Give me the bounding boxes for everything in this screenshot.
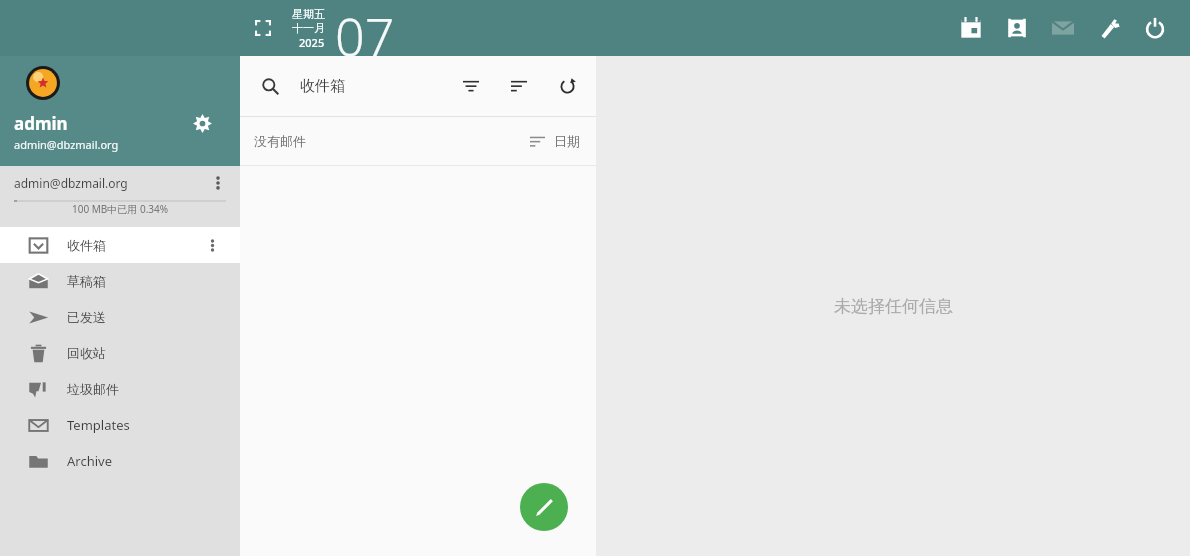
button[interactable]: 已发送 <box>0 299 240 335</box>
staticText: 回收站 <box>67 345 106 361</box>
staticText: Templates <box>67 416 130 434</box>
button[interactable]: admin@dbzmail.org <box>0 166 240 223</box>
staticText: 草稿箱 <box>67 273 106 289</box>
staticText: 已发送 <box>67 309 106 325</box>
staticText: admin@dbzmail.org <box>14 137 119 152</box>
button[interactable]: Search <box>240 56 596 116</box>
staticText: Archive <box>67 452 112 470</box>
staticText: admin <box>14 112 68 135</box>
button[interactable]: Calendar <box>948 5 994 51</box>
staticText: 收件箱 <box>67 237 106 253</box>
staticText: admin@dbzmail.org <box>14 175 128 191</box>
staticText: 收件箱 <box>300 77 345 96</box>
button[interactable]: 没有邮件 <box>240 117 596 165</box>
staticText: 07 <box>335 0 395 56</box>
button[interactable]: Folder menu <box>198 231 226 259</box>
staticText: 垃圾邮件 <box>67 381 119 397</box>
staticText: 未选择任何信息 <box>834 296 953 317</box>
button[interactable]: Archive <box>0 443 240 479</box>
button[interactable]: Compose <box>520 483 568 531</box>
button[interactable]: Account menu <box>204 169 232 197</box>
button[interactable]: Search <box>254 70 286 102</box>
staticText: 十一月 <box>292 21 325 35</box>
staticText: 没有邮件 <box>254 133 306 149</box>
button[interactable]: Contacts <box>994 5 1040 51</box>
staticText: 2025 <box>299 35 325 50</box>
button[interactable]: Fullscreen <box>248 13 278 43</box>
button[interactable]: 回收站 <box>0 335 240 371</box>
button[interactable]: 草稿箱 <box>0 263 240 299</box>
staticText: 日期 <box>554 133 580 149</box>
button[interactable]: Sort <box>500 67 538 105</box>
button[interactable]: Power <box>1132 5 1178 51</box>
button[interactable]: 收件箱 <box>0 227 240 263</box>
staticText: 100 MB中已用 0.34% <box>72 202 169 216</box>
button[interactable]: Mail <box>1040 5 1086 51</box>
button[interactable]: Templates <box>0 407 240 443</box>
button[interactable]: Account settings <box>186 107 218 139</box>
button[interactable]: Refresh <box>548 67 586 105</box>
staticText: 星期五 <box>292 7 325 21</box>
button[interactable]: Filter <box>452 67 490 105</box>
button[interactable]: 垃圾邮件 <box>0 371 240 407</box>
button[interactable]: Settings <box>1086 5 1132 51</box>
